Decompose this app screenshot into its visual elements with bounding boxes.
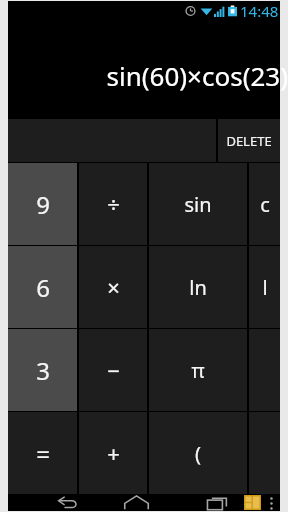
- button[interactable]: 9: [8, 163, 77, 245]
- staticText: DELETE: [226, 132, 272, 150]
- button[interactable]: Home: [119, 494, 153, 511]
- button[interactable]: =: [8, 412, 77, 494]
- staticText: ln: [189, 274, 207, 301]
- button[interactable]: ×: [79, 246, 147, 328]
- staticText: 3: [36, 354, 50, 387]
- button[interactable]: ÷: [79, 163, 147, 245]
- staticText: sin: [184, 191, 212, 218]
- staticText: 6: [36, 271, 50, 304]
- button[interactable]: (: [149, 412, 247, 494]
- staticText: l: [262, 274, 268, 301]
- staticText: ÷: [107, 189, 120, 219]
- button[interactable]: 6: [8, 246, 77, 328]
- button[interactable]: Recent apps: [202, 494, 234, 511]
- button[interactable]: Back: [50, 494, 84, 511]
- staticText: (: [195, 440, 201, 467]
- staticText: 9: [36, 188, 50, 221]
- button[interactable]: +: [79, 412, 147, 494]
- button[interactable]: l: [249, 246, 280, 328]
- button[interactable]: More options: [263, 495, 279, 511]
- staticText: ×: [107, 272, 120, 302]
- staticText: sin(60)×cos(23): [106, 58, 288, 93]
- staticText: 14:48: [240, 1, 279, 20]
- button[interactable]: ln: [149, 246, 247, 328]
- staticText: =: [36, 437, 50, 470]
- button[interactable]: π: [149, 329, 247, 411]
- button[interactable]: DELETE: [218, 119, 280, 162]
- button[interactable]: c: [249, 163, 280, 245]
- button[interactable]: −: [79, 329, 147, 411]
- button[interactable]: 3: [8, 329, 77, 411]
- staticText: c: [260, 191, 270, 218]
- staticText: π: [191, 357, 205, 384]
- button[interactable]: Switch input method: [240, 494, 264, 511]
- staticText: −: [107, 355, 120, 385]
- staticText: +: [107, 438, 120, 468]
- button[interactable]: sin: [149, 163, 247, 245]
